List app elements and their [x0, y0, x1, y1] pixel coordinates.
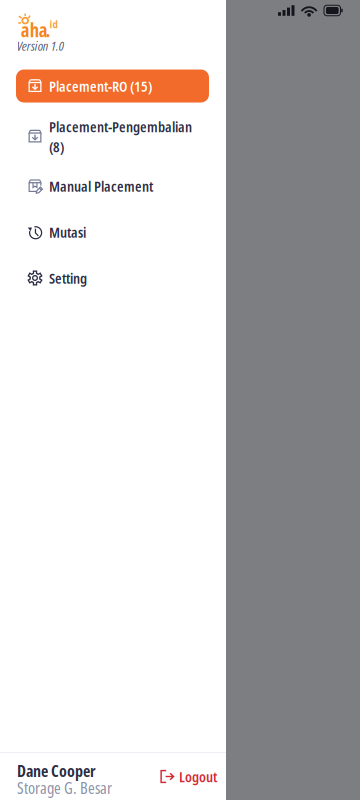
button[interactable]: Logout	[160, 762, 217, 790]
staticText: Manual Placement	[49, 176, 153, 196]
staticText: Version 1.0	[17, 36, 64, 55]
button[interactable]: Setting	[16, 255, 226, 301]
staticText: id	[49, 17, 57, 31]
button[interactable]: Manual Placement	[16, 163, 226, 209]
staticText: Placement-RO (15)	[49, 76, 152, 96]
button[interactable]: Placement-Pengembalian (8)	[16, 110, 226, 163]
staticText: Setting	[49, 268, 87, 288]
staticText: Storage G. Besar	[17, 777, 112, 799]
staticText: aha	[21, 17, 48, 43]
button[interactable]: Placement-RO (15)	[16, 62, 226, 110]
staticText: .	[46, 17, 51, 43]
staticText: Placement-Pengembalian (8)	[49, 116, 192, 156]
staticText: Dane Cooper	[17, 760, 96, 782]
staticText: Mutasi	[49, 222, 86, 242]
button[interactable]: Mutasi	[16, 209, 226, 255]
staticText: Logout	[179, 766, 217, 786]
